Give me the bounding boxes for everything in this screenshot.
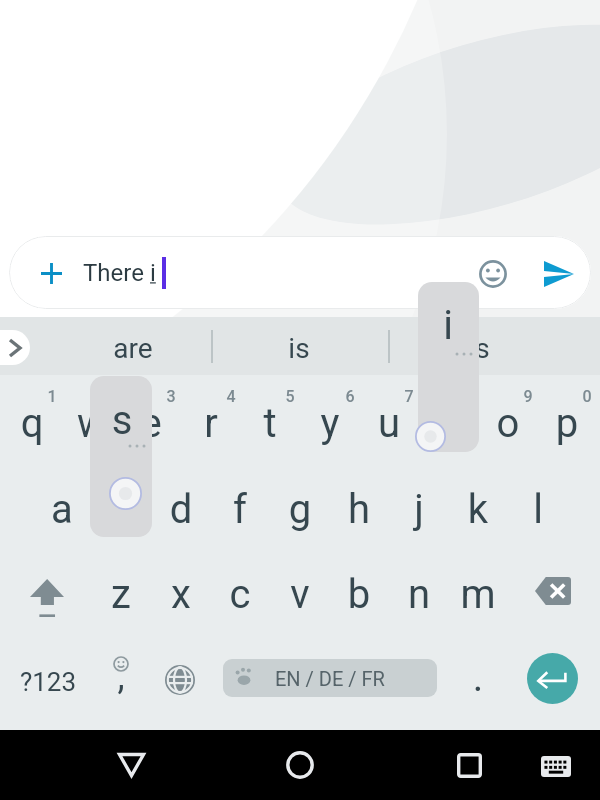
staticText: , bbox=[101, 656, 141, 698]
button[interactable] bbox=[300, 376, 359, 462]
button[interactable]: Expand suggestions bbox=[0, 330, 30, 365]
staticText: b bbox=[324, 571, 394, 618]
button[interactable] bbox=[62, 376, 121, 462]
staticText: r bbox=[176, 400, 246, 447]
button[interactable] bbox=[14, 645, 84, 715]
button[interactable] bbox=[330, 462, 389, 548]
staticText: s bbox=[86, 486, 156, 533]
button[interactable] bbox=[92, 462, 151, 548]
staticText: 7 bbox=[394, 387, 424, 406]
button[interactable] bbox=[240, 376, 299, 462]
staticText: l bbox=[503, 486, 573, 533]
button[interactable] bbox=[92, 548, 151, 634]
staticText: f bbox=[205, 486, 275, 533]
button[interactable] bbox=[270, 548, 329, 634]
staticText: ?123 bbox=[3, 667, 93, 697]
button[interactable] bbox=[212, 317, 388, 375]
button[interactable] bbox=[448, 462, 507, 548]
button[interactable] bbox=[40, 317, 211, 375]
button[interactable] bbox=[3, 376, 62, 462]
staticText: h bbox=[324, 486, 394, 533]
staticText: j bbox=[384, 486, 454, 533]
staticText: i bbox=[414, 400, 484, 447]
button[interactable] bbox=[389, 548, 448, 634]
button[interactable]: Enter bbox=[527, 653, 578, 704]
staticText: is bbox=[264, 332, 334, 365]
button[interactable] bbox=[32, 462, 91, 548]
staticText: q bbox=[0, 400, 67, 447]
button[interactable]: Back bbox=[101, 735, 161, 795]
staticText: 6 bbox=[335, 387, 365, 406]
button[interactable]: Recent apps bbox=[439, 735, 499, 795]
button[interactable]: Home bbox=[270, 735, 330, 795]
button[interactable] bbox=[181, 376, 240, 462]
staticText: o bbox=[473, 400, 543, 447]
staticText: c bbox=[205, 571, 275, 618]
button[interactable] bbox=[538, 376, 597, 462]
button[interactable]: EN / DE / FR bbox=[223, 659, 437, 697]
staticText: k bbox=[443, 486, 513, 533]
button[interactable]: Shift bbox=[17, 548, 77, 634]
button[interactable] bbox=[448, 548, 507, 634]
staticText: 0 bbox=[572, 387, 600, 406]
button[interactable]: Switch keyboard bbox=[531, 741, 581, 791]
staticText: is bbox=[444, 332, 514, 365]
staticText: d bbox=[146, 486, 216, 533]
staticText: a bbox=[27, 486, 97, 533]
button[interactable] bbox=[478, 376, 537, 462]
staticText: m bbox=[443, 571, 513, 618]
staticText: e bbox=[116, 400, 186, 447]
button[interactable] bbox=[447, 645, 507, 715]
button[interactable]: Send bbox=[537, 252, 581, 296]
button[interactable] bbox=[389, 317, 600, 375]
staticText: s bbox=[87, 397, 157, 444]
button[interactable]: Add attachment bbox=[25, 247, 77, 299]
staticText: p bbox=[532, 400, 600, 447]
staticText: 4 bbox=[216, 387, 246, 406]
staticText: z bbox=[86, 571, 156, 618]
staticText: n bbox=[384, 571, 454, 618]
button[interactable] bbox=[508, 462, 567, 548]
staticText: 9 bbox=[513, 387, 543, 406]
staticText: 8 bbox=[454, 387, 484, 406]
button[interactable] bbox=[211, 462, 270, 548]
button[interactable] bbox=[122, 376, 181, 462]
staticText: y bbox=[295, 400, 365, 447]
button[interactable] bbox=[389, 462, 448, 548]
button[interactable] bbox=[211, 548, 270, 634]
staticText: g bbox=[265, 486, 335, 533]
staticText: u bbox=[354, 400, 424, 447]
staticText: v bbox=[265, 571, 335, 618]
button[interactable] bbox=[151, 462, 210, 548]
button[interactable] bbox=[270, 462, 329, 548]
button[interactable] bbox=[330, 548, 389, 634]
button[interactable] bbox=[359, 376, 418, 462]
button[interactable]: Emoji bbox=[471, 252, 515, 296]
button[interactable] bbox=[92, 645, 152, 715]
button[interactable]: Change language bbox=[150, 645, 210, 715]
staticText: . bbox=[458, 654, 498, 701]
staticText: 1 bbox=[37, 387, 67, 406]
staticText: EN / DE / FR bbox=[275, 667, 385, 690]
staticText: 5 bbox=[275, 387, 305, 406]
button[interactable] bbox=[419, 376, 478, 462]
staticText: i bbox=[150, 259, 156, 287]
button[interactable] bbox=[151, 548, 210, 634]
staticText: i bbox=[413, 302, 483, 349]
staticText: w bbox=[57, 400, 127, 447]
staticText: There bbox=[83, 259, 150, 287]
staticText: x bbox=[146, 571, 216, 618]
staticText: are bbox=[98, 332, 168, 365]
staticText: 3 bbox=[156, 387, 186, 406]
staticText: t bbox=[235, 400, 305, 447]
button[interactable]: Backspace bbox=[523, 548, 583, 634]
